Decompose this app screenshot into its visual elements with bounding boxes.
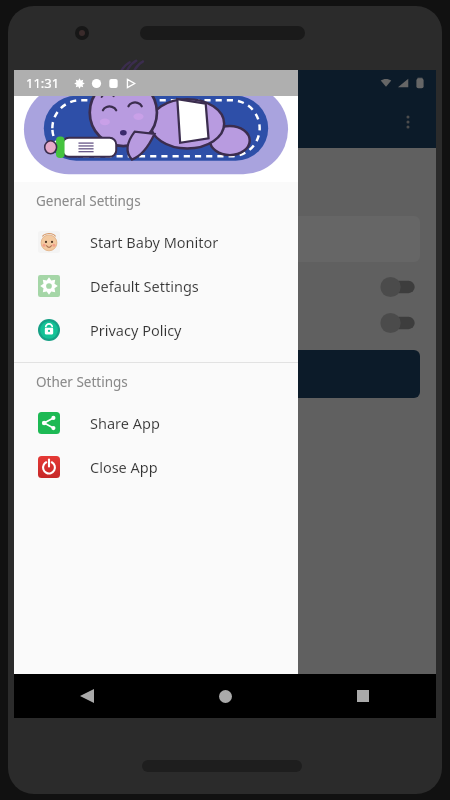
- staticText: Default Settings: [90, 276, 199, 296]
- staticText: General Settings: [36, 192, 141, 210]
- button[interactable]: Share App: [14, 401, 298, 445]
- button[interactable]: Start Baby Monitor: [14, 220, 298, 264]
- button[interactable]: START MONITOR: [30, 350, 420, 398]
- staticText: Other Settings: [36, 373, 128, 391]
- button[interactable]: Privacy Policy: [14, 308, 298, 352]
- staticText: 11:31: [26, 74, 60, 92]
- button[interactable]: Back: [70, 679, 104, 713]
- button[interactable]: Default Settings: [14, 264, 298, 308]
- button[interactable]: More options: [388, 102, 428, 142]
- staticText: Start Baby Monitor: [90, 232, 219, 252]
- button[interactable]: Close App: [14, 445, 298, 489]
- button[interactable]: Home: [208, 679, 242, 713]
- staticText: Close App: [90, 457, 158, 477]
- staticText: Share App: [90, 413, 160, 433]
- staticText: Privacy Policy: [90, 320, 182, 340]
- button[interactable]: Recents: [346, 679, 380, 713]
